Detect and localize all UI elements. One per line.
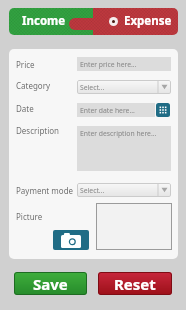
staticText: Enter price here... <box>80 60 137 69</box>
staticText: Date <box>16 103 34 114</box>
staticText: Reset <box>114 274 156 294</box>
staticText: Select... <box>80 186 105 195</box>
button[interactable]: Pick date <box>156 103 170 117</box>
staticText: Payment mode <box>16 185 74 196</box>
staticText: Income <box>22 13 66 29</box>
staticText: Description <box>16 125 60 136</box>
staticText: Price <box>16 59 35 70</box>
staticText: Expense <box>124 13 172 29</box>
button[interactable]: Select... <box>77 80 171 94</box>
staticText: Save <box>33 274 68 294</box>
button[interactable] <box>93 8 178 35</box>
button[interactable]: Enter date here... <box>77 103 155 117</box>
button[interactable]: Enter price here... <box>77 57 171 71</box>
staticText: Enter date here... <box>80 106 135 115</box>
staticText: Category <box>16 80 51 91</box>
staticText: Select... <box>80 83 105 92</box>
button[interactable]: Save <box>14 272 87 295</box>
staticText: Enter description here... <box>80 129 157 138</box>
button[interactable]: Reset <box>98 272 172 295</box>
button[interactable]: Take picture <box>53 230 89 250</box>
button[interactable]: Select... <box>77 183 171 197</box>
staticText: Picture <box>16 211 43 222</box>
button[interactable]: Enter description here... <box>77 126 171 171</box>
button[interactable] <box>9 8 93 35</box>
